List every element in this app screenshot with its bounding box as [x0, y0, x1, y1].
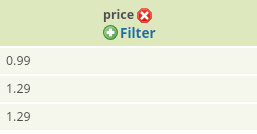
staticText: Filter: [120, 23, 156, 42]
staticText: 1.29: [6, 108, 31, 125]
button[interactable]: 1.29: [0, 76, 257, 102]
other: Add filter: [103, 25, 118, 40]
staticText: price: [103, 6, 135, 23]
button[interactable]: price: [103, 6, 152, 23]
button[interactable]: 1.29: [0, 104, 257, 130]
button[interactable]: 0.99: [0, 48, 257, 74]
staticText: 1.29: [6, 80, 31, 97]
staticText: 0.99: [6, 52, 31, 69]
button[interactable]: Add filter: [103, 23, 156, 42]
other: Remove price filter: [137, 8, 152, 23]
